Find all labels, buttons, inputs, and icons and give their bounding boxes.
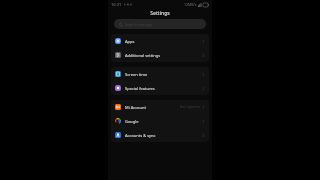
staticText: Not signed in bbox=[180, 105, 200, 109]
button[interactable]: Mi Account bbox=[111, 100, 209, 114]
staticText: Search settings bbox=[125, 22, 153, 27]
button[interactable]: Special features bbox=[111, 81, 209, 95]
button[interactable]: Additional settings bbox=[111, 48, 209, 62]
staticText: Apps bbox=[125, 39, 135, 44]
staticText: Accounts & sync bbox=[125, 133, 156, 138]
staticText: Additional settings bbox=[125, 53, 161, 58]
staticText: Screen time bbox=[125, 72, 148, 77]
staticText: Mi Account bbox=[125, 105, 146, 110]
staticText: Google bbox=[125, 119, 139, 124]
staticText: Special features bbox=[125, 86, 155, 91]
button[interactable]: Screen time bbox=[111, 67, 209, 81]
button[interactable]: Search settings bbox=[114, 19, 206, 29]
staticText: Settings bbox=[150, 10, 170, 17]
button[interactable]: Accounts & sync bbox=[111, 128, 209, 142]
staticText: 10:31 bbox=[111, 2, 122, 7]
button[interactable]: Google bbox=[111, 114, 209, 128]
button[interactable]: Apps bbox=[111, 34, 209, 48]
staticText: 12MB/s bbox=[184, 2, 197, 7]
